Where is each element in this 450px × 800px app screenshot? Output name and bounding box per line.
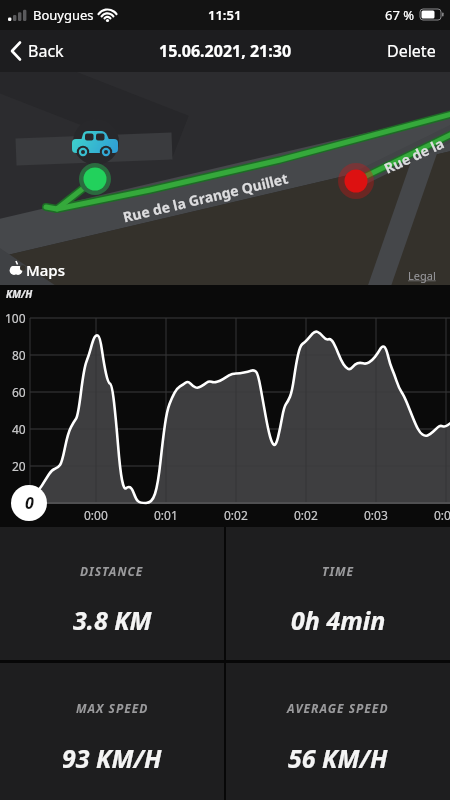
staticText: 0:04 — [434, 507, 450, 523]
button[interactable]: DISTANCE — [0, 527, 224, 660]
button[interactable]: TIME — [226, 527, 450, 660]
staticText: 11:51 — [208, 6, 242, 24]
staticText: 0:03 — [364, 507, 388, 523]
staticText: Rue de la — [381, 133, 447, 178]
staticText: AVERAGE SPEED — [287, 700, 389, 716]
staticText: TIME — [322, 563, 355, 579]
button[interactable]: Legal — [408, 268, 436, 283]
staticText: 0h 4min — [291, 603, 386, 637]
button[interactable]: Rue de la Grange Quillet — [0, 72, 450, 285]
staticText: Bouygues — [33, 6, 94, 24]
staticText: 0:00 — [84, 507, 108, 523]
staticText: Back — [28, 40, 64, 62]
staticText: 0 — [25, 492, 34, 514]
staticText: 3.8 KM — [73, 603, 152, 637]
staticText: Maps — [26, 260, 65, 280]
button[interactable]: Delete — [387, 40, 436, 62]
staticText: 80 — [12, 347, 26, 363]
staticText: 60 — [12, 384, 26, 400]
staticText: KM/H — [6, 287, 33, 301]
staticText: 0:01 — [154, 507, 178, 523]
staticText: 0:02 — [224, 507, 248, 523]
staticText: Rue de la Grange Quillet — [121, 168, 290, 226]
staticText: 93 KM/H — [62, 741, 162, 775]
staticText: MAX SPEED — [76, 700, 149, 716]
staticText: 67 % — [385, 6, 415, 24]
button[interactable]: AVERAGE SPEED — [226, 663, 450, 800]
staticText: 100 — [5, 310, 26, 326]
staticText: 20 — [12, 458, 26, 474]
staticText: 40 — [12, 421, 26, 437]
button[interactable]: MAX SPEED — [0, 663, 224, 800]
staticText: DISTANCE — [80, 563, 144, 579]
staticText: Delete — [387, 40, 436, 62]
staticText: 0:02 — [294, 507, 318, 523]
staticText: 56 KM/H — [288, 741, 388, 775]
button[interactable]: Back — [10, 40, 64, 62]
staticText: 15.06.2021, 21:30 — [159, 40, 292, 62]
